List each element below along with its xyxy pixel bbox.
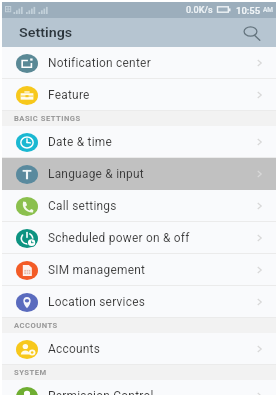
staticText: 0.0K/s bbox=[186, 5, 213, 16]
staticText: 10:55 bbox=[236, 5, 261, 16]
button[interactable]: Accounts bbox=[2, 333, 276, 365]
button[interactable]: Scheduled power on & off bbox=[2, 222, 276, 254]
staticText: SIM management bbox=[48, 263, 146, 277]
button[interactable]: Location services bbox=[2, 286, 276, 318]
staticText: Date & time bbox=[48, 135, 113, 149]
staticText: Feature bbox=[48, 88, 90, 102]
button[interactable]: Feature bbox=[2, 79, 276, 111]
button[interactable]: Search bbox=[242, 23, 262, 43]
staticText: SYSTEM bbox=[14, 368, 47, 377]
staticText: Scheduled power on & off bbox=[48, 231, 190, 245]
staticText: Permission Control bbox=[48, 389, 154, 395]
staticText: BASIC SETTINGS bbox=[14, 114, 81, 123]
button[interactable]: Notification center bbox=[2, 47, 276, 79]
staticText: Location services bbox=[48, 295, 146, 309]
button[interactable]: Call settings bbox=[2, 190, 276, 222]
button[interactable]: Date & time bbox=[2, 126, 276, 158]
staticText: Call settings bbox=[48, 199, 117, 213]
staticText: ACCOUNTS bbox=[14, 321, 58, 330]
staticText: AM bbox=[263, 6, 273, 14]
staticText: Accounts bbox=[48, 342, 101, 356]
button[interactable]: Language & input bbox=[2, 158, 276, 190]
button[interactable]: SIM management bbox=[2, 254, 276, 286]
staticText: Settings bbox=[19, 26, 73, 40]
staticText: Notification center bbox=[48, 56, 151, 70]
button[interactable]: Permission Control bbox=[2, 380, 276, 395]
staticText: Language & input bbox=[48, 167, 144, 181]
